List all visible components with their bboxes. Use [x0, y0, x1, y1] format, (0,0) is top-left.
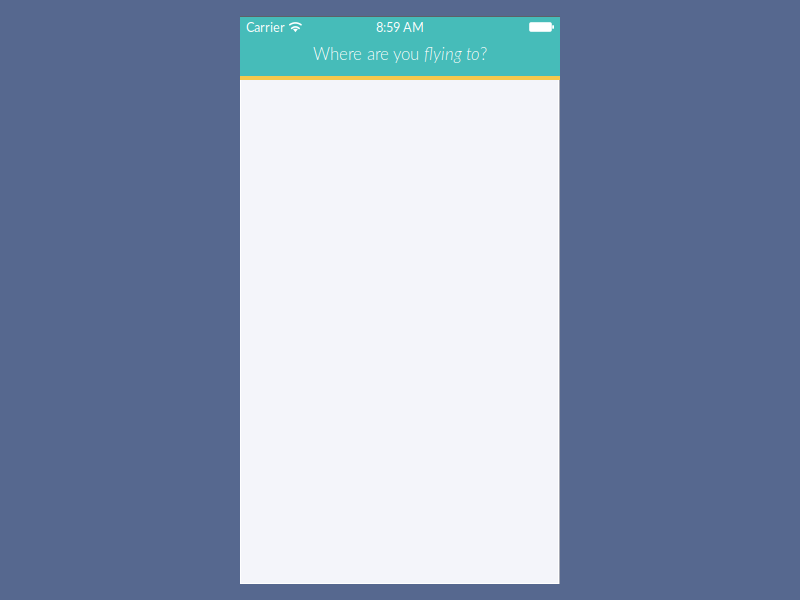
- staticText: Where are you flying to?: [313, 44, 487, 63]
- staticText: 8:59 AM: [376, 19, 424, 35]
- staticText: Carrier: [246, 19, 285, 35]
